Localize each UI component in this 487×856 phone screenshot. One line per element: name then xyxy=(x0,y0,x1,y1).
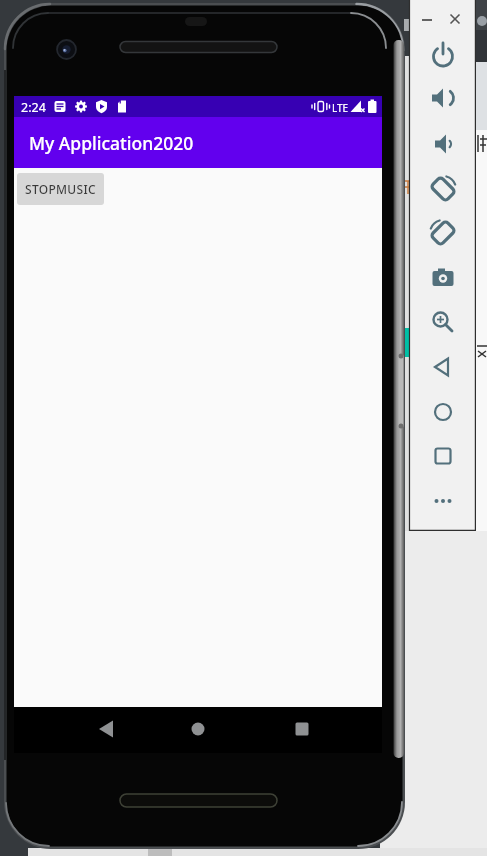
button[interactable] xyxy=(425,349,461,385)
staticText: 2:24 xyxy=(21,99,46,116)
button[interactable] xyxy=(425,304,461,340)
staticText: LTE xyxy=(332,101,349,115)
staticText: STOPMUSIC xyxy=(25,181,96,197)
button[interactable] xyxy=(425,438,461,474)
button[interactable] xyxy=(425,37,461,73)
button[interactable] xyxy=(425,483,461,519)
button[interactable] xyxy=(425,215,461,251)
button[interactable] xyxy=(425,126,461,162)
button[interactable] xyxy=(425,260,461,296)
button[interactable] xyxy=(178,709,218,749)
button[interactable] xyxy=(425,394,461,430)
button[interactable] xyxy=(425,80,461,116)
staticText: My Application2020 xyxy=(29,131,194,155)
button[interactable] xyxy=(87,709,127,749)
button[interactable] xyxy=(282,709,322,749)
button[interactable] xyxy=(447,11,463,27)
button[interactable]: STOPMUSIC xyxy=(17,173,104,205)
button[interactable] xyxy=(419,12,435,28)
button[interactable] xyxy=(425,171,461,207)
